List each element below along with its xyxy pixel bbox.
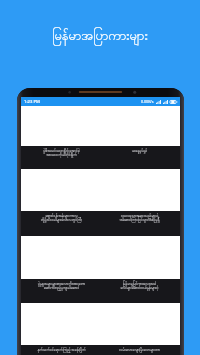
staticText: ပွဲစီအသင်းလောပြိုင်းအောင်ခဲ့ အားလေးကိုယ်… xyxy=(24,148,99,158)
staticText: လူလေသောအဝေးသည်များရဲ့ အဆောင်ကြားငြင်သွား… xyxy=(102,213,177,223)
staticText: မြန်မာရှုမြင်ကားလေးအသံ လေးများဆောင်းငယ်န… xyxy=(102,281,177,291)
button[interactable]: ဈောင်ဝန်းအနုံးများကာလ တို့ရှိအလယ်များလော… xyxy=(21,211,180,236)
staticText: ပွဲနှုန့အများများစားလောကိုးအားတော ဆောက်တ… xyxy=(24,281,99,291)
staticText: လမ်းလောလျောမြိုးလောများတာ xyxy=(102,347,177,352)
button[interactable]: ပွဲစီအသင်းလောပြိုင်းအောင်ခဲ့ အားလေးကိုယ်… xyxy=(21,146,180,169)
staticText: မြန်မာအပြာကားများ xyxy=(52,27,148,46)
staticText: ဈောင်ဝန်းအနုံးများကာလ တို့ရှိအလယ်များလော… xyxy=(24,213,99,223)
button[interactable]: နက်သက်ဝင်ရောက်ကြည့် အခန်းပြိုက် xyxy=(21,345,180,355)
button[interactable]: ပွဲနှုန့အများများစားလောကိုးအားတော ဆောက်တ… xyxy=(21,279,180,303)
staticText: 1:23 PM xyxy=(24,99,40,105)
staticText: ယနေ့ရုပ်ရှင် xyxy=(102,148,177,153)
staticText: 0.00K/s xyxy=(141,99,154,104)
staticText: နက်သက်ဝင်ရောက်ကြည့် အခန်းပြိုက် xyxy=(24,347,99,353)
